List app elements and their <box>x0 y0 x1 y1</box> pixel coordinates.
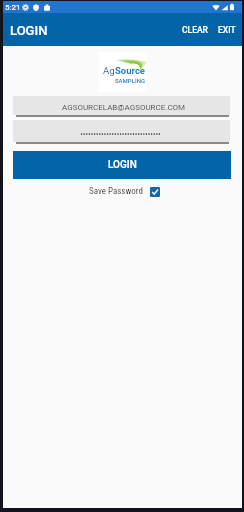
button[interactable]: Save Password <box>89 184 160 199</box>
staticText: CLEAR <box>182 25 208 35</box>
button[interactable]: CLEAR <box>175 16 215 44</box>
staticText: Ag <box>103 65 115 76</box>
staticText: AGSOURCELAB@AGSOURCE.COM <box>62 103 186 112</box>
button[interactable]: AGSOURCELAB@AGSOURCE.COM <box>13 96 230 115</box>
staticText: LOGIN <box>10 23 48 38</box>
button[interactable] <box>13 120 230 142</box>
staticText: LOGIN <box>108 159 137 171</box>
button[interactable]: EXIT <box>215 16 242 44</box>
staticText: SAMPLING <box>115 77 145 84</box>
staticText: 5:21 <box>5 3 21 12</box>
staticText: Save Password <box>89 186 143 197</box>
button[interactable]: LOGIN <box>13 151 231 179</box>
staticText: EXIT <box>218 25 236 35</box>
staticText: Source <box>115 65 146 76</box>
